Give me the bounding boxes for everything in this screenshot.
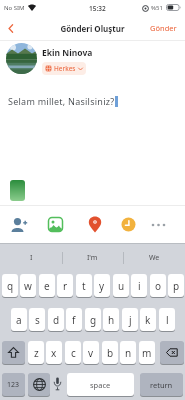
- staticText: v: [88, 346, 94, 360]
- staticText: a: [16, 313, 22, 327]
- button[interactable]: [2, 341, 25, 364]
- staticText: d: [53, 313, 60, 327]
- staticText: t: [82, 279, 86, 293]
- button[interactable]: [110, 206, 147, 243]
- staticText: z: [34, 346, 39, 360]
- button[interactable]: u: [113, 274, 129, 297]
- button[interactable]: d: [48, 308, 64, 331]
- button[interactable]: e: [39, 274, 55, 297]
- staticText: h: [108, 313, 115, 327]
- staticText: w: [24, 279, 32, 293]
- button[interactable]: a: [11, 308, 27, 331]
- button[interactable]: [37, 206, 74, 243]
- staticText: k: [145, 313, 151, 327]
- staticText: Gönder: [150, 23, 177, 33]
- staticText: No SIM: [4, 4, 25, 12]
- button[interactable]: r: [57, 274, 73, 297]
- button[interactable]: q: [2, 274, 18, 297]
- button[interactable]: f: [66, 308, 82, 331]
- button[interactable]: y: [94, 274, 110, 297]
- staticText: e: [44, 279, 50, 293]
- staticText: u: [118, 279, 125, 293]
- button[interactable]: [160, 341, 184, 364]
- staticText: I'm: [87, 253, 98, 263]
- staticText: g: [90, 313, 97, 327]
- staticText: Herkes: [54, 64, 76, 73]
- button[interactable]: [0, 206, 37, 243]
- button[interactable]: n: [120, 341, 136, 364]
- staticText: b: [107, 346, 114, 360]
- staticText: 15:32: [89, 4, 106, 13]
- staticText: m: [142, 346, 152, 360]
- staticText: I: [30, 253, 33, 263]
- staticText: j: [129, 313, 132, 327]
- button[interactable]: [4, 18, 18, 38]
- button[interactable]: o: [150, 274, 166, 297]
- button[interactable]: s: [29, 308, 45, 331]
- staticText: l: [166, 313, 169, 327]
- staticText: p: [173, 279, 180, 293]
- button[interactable]: x: [46, 341, 62, 364]
- button[interactable]: t: [76, 274, 92, 297]
- button[interactable]: l: [159, 308, 175, 331]
- button[interactable]: Gönder: [144, 18, 182, 38]
- staticText: o: [155, 279, 162, 293]
- staticText: Gönderi Oluştur: [0, 23, 185, 34]
- button[interactable]: i: [131, 274, 147, 297]
- button[interactable]: Herkes: [42, 62, 86, 75]
- staticText: q: [7, 279, 14, 293]
- button[interactable]: b: [102, 341, 118, 364]
- button[interactable]: p: [168, 274, 184, 297]
- staticText: x: [51, 346, 57, 360]
- button[interactable]: k: [140, 308, 156, 331]
- button[interactable]: [28, 373, 50, 396]
- button[interactable]: g: [85, 308, 101, 331]
- staticText: Ekin Ninova: [42, 47, 93, 59]
- button[interactable]: m: [139, 341, 155, 364]
- staticText: y: [99, 279, 105, 293]
- button[interactable]: [76, 206, 113, 243]
- button[interactable]: w: [20, 274, 36, 297]
- staticText: f: [72, 313, 76, 327]
- staticText: s: [35, 313, 40, 327]
- button[interactable]: z: [28, 341, 44, 364]
- staticText: Selam millet, Nasilsiniz?: [8, 95, 115, 107]
- staticText: return: [150, 380, 173, 390]
- staticText: 123: [7, 380, 20, 390]
- staticText: c: [71, 346, 76, 360]
- staticText: %51: [151, 4, 163, 12]
- button[interactable]: v: [83, 341, 99, 364]
- button[interactable]: [10, 180, 25, 201]
- button[interactable]: h: [103, 308, 119, 331]
- button[interactable]: I: [0, 246, 62, 270]
- staticText: We: [149, 253, 160, 263]
- button[interactable]: We: [123, 246, 185, 270]
- button[interactable]: 123: [2, 373, 25, 396]
- staticText: i: [138, 279, 141, 293]
- staticText: space: [90, 380, 111, 390]
- button[interactable]: space: [67, 373, 134, 396]
- button[interactable]: I'm: [62, 246, 123, 270]
- button[interactable]: [140, 206, 177, 243]
- button[interactable]: return: [140, 373, 183, 396]
- staticText: r: [63, 279, 68, 293]
- button[interactable]: j: [122, 308, 138, 331]
- staticText: n: [125, 346, 132, 360]
- button[interactable]: c: [65, 341, 81, 364]
